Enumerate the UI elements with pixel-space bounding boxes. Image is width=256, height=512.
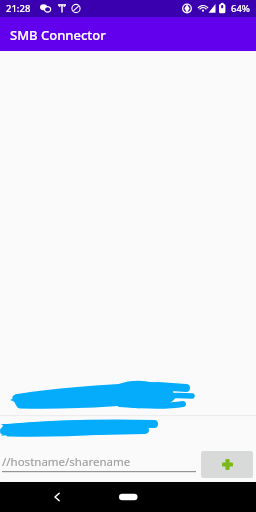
staticText: 64% [231,2,250,15]
staticText: SMB Connector [10,26,106,44]
button[interactable]: Add share [201,451,253,478]
staticText: 21:28 [6,2,31,15]
staticText: //hostname/sharename [2,454,131,470]
button[interactable]: Back [46,482,68,504]
button[interactable]: Home [110,486,146,502]
